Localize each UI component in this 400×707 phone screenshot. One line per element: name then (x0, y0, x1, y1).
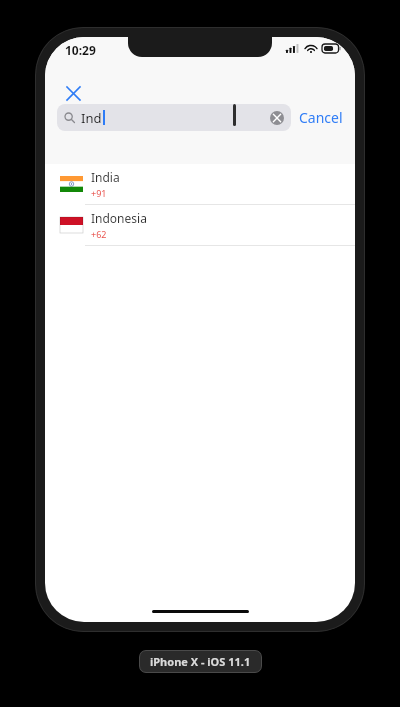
staticText: Indonesia (91, 210, 147, 226)
button[interactable]: Cancel (291, 108, 345, 127)
button[interactable]: Indonesia (45, 205, 355, 246)
staticText: iPhone X - iOS 11.1 (150, 654, 251, 669)
staticText: 10:29 (65, 42, 96, 58)
button[interactable]: India (45, 164, 355, 205)
staticText: +91 (91, 187, 107, 199)
button[interactable]: Close (56, 76, 90, 110)
staticText: Cancel (299, 108, 343, 127)
staticText: +62 (91, 228, 107, 240)
staticText: India (91, 169, 120, 185)
staticText: Ind (81, 109, 102, 127)
button[interactable]: Clear text (270, 111, 284, 125)
button[interactable]: Ind (57, 104, 291, 131)
